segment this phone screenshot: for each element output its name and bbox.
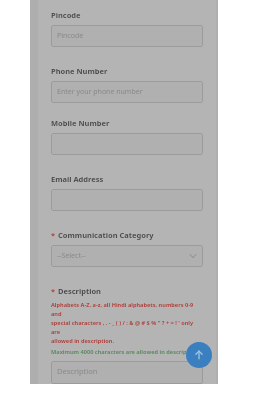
staticText: Communication Category (58, 230, 154, 240)
button[interactable]: Enter your phone number (51, 81, 203, 103)
button[interactable]: Description (51, 361, 203, 384)
staticText: Pincode (51, 10, 81, 20)
staticText: Phone Number (51, 66, 108, 76)
staticText: Email Address (51, 174, 104, 184)
staticText: --Select-- (57, 251, 86, 261)
staticText: Alphabets A-Z, a-z, all Hindi alphabets,… (51, 300, 203, 318)
button[interactable] (51, 133, 203, 155)
staticText: special characters , . - _ ( ) / : & @ #… (51, 318, 203, 336)
button[interactable]: Scroll to top (186, 342, 212, 368)
button[interactable]: Pincode (51, 25, 203, 47)
staticText: allowed in description. (51, 336, 115, 345)
button[interactable] (51, 189, 203, 211)
staticText: * (51, 286, 58, 296)
staticText: Description (57, 366, 98, 376)
staticText: Mobile Number (51, 118, 110, 128)
staticText: Maximum 4000 characters are allowed in d… (51, 347, 200, 356)
button[interactable]: --Select-- (51, 245, 203, 267)
staticText: * (51, 230, 58, 240)
staticText: Description (58, 286, 101, 296)
staticText: Pincode (57, 31, 84, 41)
staticText: Enter your phone number (57, 87, 143, 97)
